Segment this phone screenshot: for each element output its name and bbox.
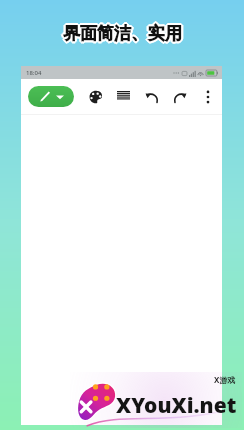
button[interactable]: Undo [143, 85, 160, 109]
button[interactable]: Layers [115, 85, 132, 109]
staticText: 界面简洁、实用 [63, 23, 182, 44]
staticText: 18:04 [26, 69, 42, 77]
staticText: 界面简洁、实用 [64, 24, 183, 45]
staticText: 界面简洁、实用 [63, 25, 182, 46]
button[interactable]: Pen tool [28, 86, 74, 107]
staticText: XYouXi.net [116, 391, 237, 420]
staticText: 界面简洁、实用 [63, 21, 182, 42]
staticText: 界面简洁、实用 [64, 22, 183, 43]
staticText: 界面简洁、实用 [62, 22, 181, 43]
staticText: 界面简洁、实用 [61, 23, 180, 44]
button[interactable]: More options [199, 85, 216, 109]
button[interactable]: Redo [171, 85, 188, 109]
staticText: 界面简洁、实用 [65, 23, 184, 44]
button[interactable]: Palette [87, 85, 104, 109]
staticText: X游戏 [214, 374, 236, 385]
staticText: 界面简洁、实用 [62, 24, 181, 45]
